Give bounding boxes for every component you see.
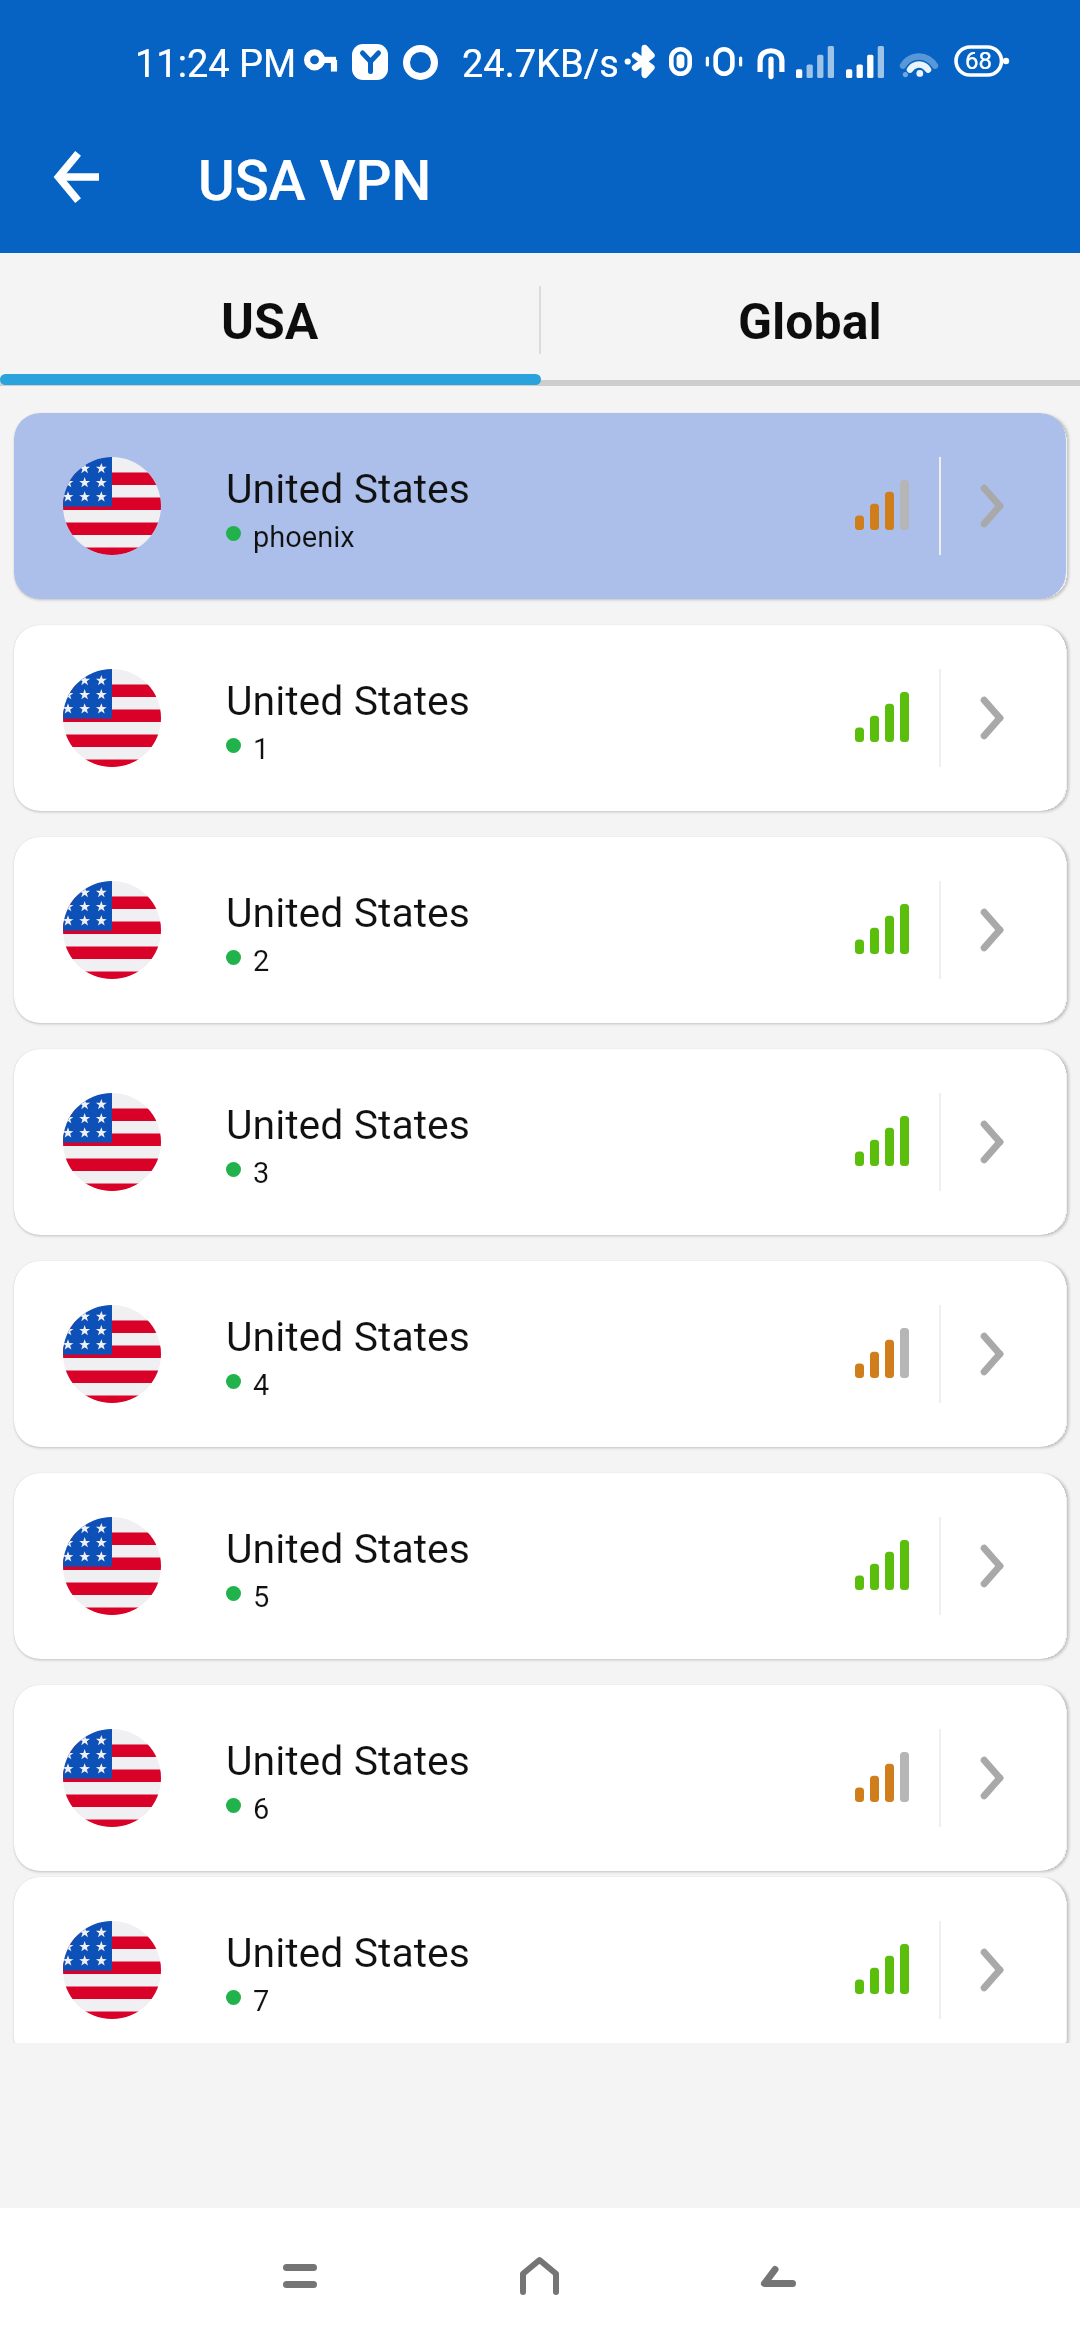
button[interactable]: Home	[494, 2231, 584, 2321]
staticText: 3	[253, 1156, 270, 1190]
staticText: 11:24 PM	[135, 42, 297, 87]
staticText: United States	[226, 1313, 471, 1361]
staticText: 6	[253, 1792, 270, 1826]
staticText: USA	[221, 293, 319, 352]
staticText: USA VPN	[198, 148, 432, 214]
button[interactable]: United States	[14, 837, 1066, 1023]
button[interactable]: United States	[14, 413, 1066, 599]
staticText: 2	[253, 944, 270, 978]
staticText: United States	[226, 1525, 471, 1573]
button[interactable]: United States	[14, 1261, 1066, 1447]
button[interactable]: Open server details	[949, 887, 1035, 973]
button[interactable]: Open server details	[949, 675, 1035, 761]
button[interactable]: USA	[0, 253, 540, 374]
button[interactable]: United States	[14, 625, 1066, 811]
staticText: United States	[226, 465, 471, 513]
staticText: phoenix	[253, 520, 355, 554]
button[interactable]: United States	[14, 1685, 1066, 1871]
staticText: United States	[226, 889, 471, 937]
staticText: 4	[253, 1368, 270, 1402]
button[interactable]: Back	[733, 2231, 823, 2321]
staticText: Global	[738, 293, 882, 352]
button[interactable]: United States	[14, 1049, 1066, 1235]
button[interactable]: Open server details	[949, 1523, 1035, 1609]
button[interactable]: Recent apps	[255, 2231, 345, 2321]
button[interactable]: Open server details	[949, 1099, 1035, 1185]
staticText: 1	[253, 732, 270, 766]
staticText: 68	[965, 47, 992, 75]
staticText: United States	[226, 677, 471, 725]
button[interactable]: Open server details	[949, 1735, 1035, 1821]
button[interactable]: Open server details	[949, 1927, 1035, 2013]
staticText: United States	[226, 1929, 471, 1977]
button[interactable]: Back	[47, 147, 107, 207]
staticText: 7	[253, 1984, 270, 2018]
staticText: United States	[226, 1737, 471, 1785]
button[interactable]: Open server details	[949, 463, 1035, 549]
button[interactable]: Global	[540, 253, 1080, 374]
button[interactable]: Open server details	[949, 1311, 1035, 1397]
button[interactable]: United States	[14, 1473, 1066, 1659]
staticText: United States	[226, 1101, 471, 1149]
staticText: 24.7KB/s	[462, 42, 619, 87]
button[interactable]: United States	[14, 1877, 1066, 2043]
staticText: 5	[253, 1580, 270, 1614]
